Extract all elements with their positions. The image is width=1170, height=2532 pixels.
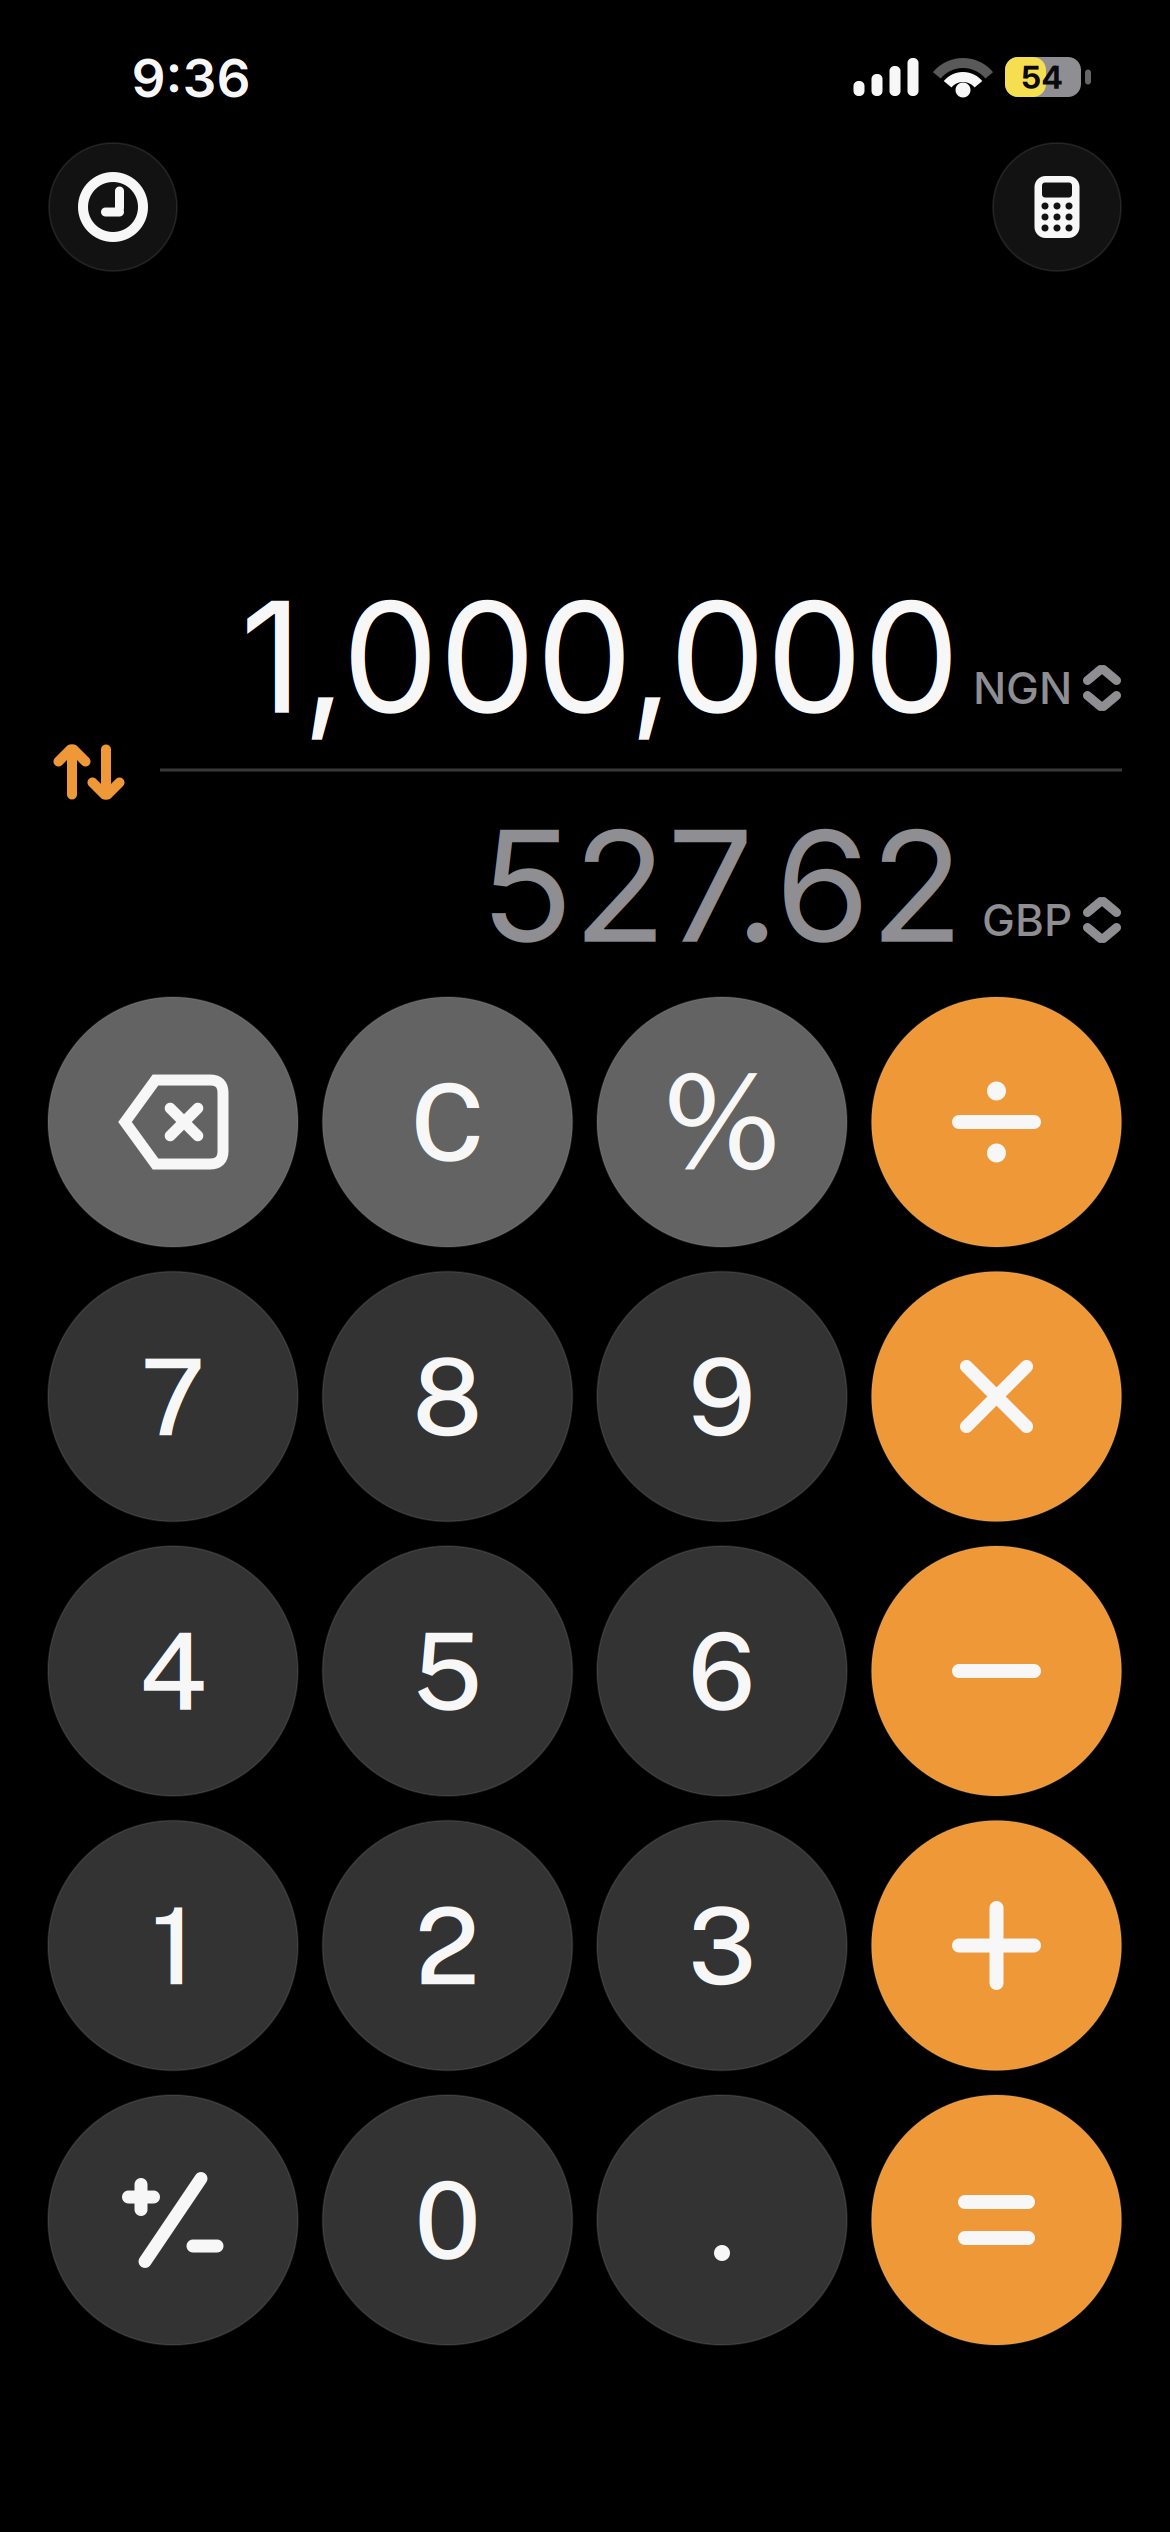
button[interactable]: 1 — [48, 1820, 298, 2070]
staticText: 527.62 — [480, 793, 964, 979]
staticText: 8 — [412, 1334, 482, 1459]
button[interactable]: C — [322, 997, 572, 1247]
button[interactable]: Swap currencies — [41, 728, 137, 816]
button[interactable]: Add — [871, 1820, 1121, 2070]
staticText: 0 — [414, 2157, 480, 2283]
button[interactable]: Delete — [48, 997, 298, 1247]
button[interactable]: Decimal point — [597, 2095, 847, 2345]
staticText: 4 — [139, 1608, 207, 1734]
button[interactable]: 4 — [48, 1546, 298, 1796]
button[interactable]: 9 — [597, 1271, 847, 1521]
staticText: 1,000,000 — [240, 564, 960, 750]
button[interactable]: 0 — [322, 2095, 572, 2345]
staticText: 3 — [688, 1883, 756, 2008]
staticText: 54 — [1021, 58, 1062, 96]
button[interactable]: % — [597, 997, 847, 1247]
button[interactable]: Plus minus — [48, 2095, 298, 2345]
button[interactable]: NGN — [921, 655, 1121, 721]
button[interactable]: 7 — [48, 1271, 298, 1521]
staticText: 1 — [151, 1883, 195, 2008]
staticText: 9:36 — [131, 46, 250, 110]
staticText: 5 — [413, 1608, 482, 1734]
button[interactable]: History — [49, 143, 177, 271]
button[interactable]: GBP — [921, 887, 1121, 953]
button[interactable]: 3 — [597, 1820, 847, 2070]
staticText: 2 — [415, 1883, 480, 2008]
button[interactable]: 5 — [322, 1546, 572, 1796]
button[interactable]: Multiply — [871, 1271, 1121, 1521]
staticText: 9 — [688, 1334, 756, 1459]
staticText: 6 — [688, 1608, 756, 1734]
button[interactable]: 6 — [597, 1546, 847, 1796]
staticText: GBP — [982, 893, 1072, 947]
button[interactable]: Equals — [871, 2095, 1121, 2345]
staticText: C — [410, 1059, 484, 1185]
button[interactable]: Calculator — [993, 143, 1121, 271]
button[interactable]: 2 — [322, 1820, 572, 2070]
button[interactable]: 8 — [322, 1271, 572, 1521]
button[interactable]: Subtract — [871, 1546, 1121, 1796]
staticText: 7 — [140, 1334, 205, 1459]
staticText: NGN — [973, 661, 1072, 715]
staticText: % — [662, 1045, 781, 1199]
button[interactable]: Divide — [871, 997, 1121, 1247]
